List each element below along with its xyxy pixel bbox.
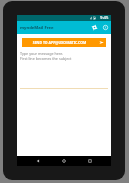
- staticText: First line becomes the subject: [20, 56, 72, 61]
- button[interactable]: Info: [100, 22, 111, 33]
- staticText: 9:45: [100, 15, 109, 21]
- button[interactable]: Back: [33, 156, 43, 166]
- staticText: Type your message here.: [20, 51, 64, 56]
- staticText: SEND TO APP@UXOMATIC.COM: [22, 40, 97, 45]
- staticText: myndeMail Free: [20, 25, 54, 31]
- button[interactable]: SEND TO APP@UXOMATIC.COM: [22, 38, 106, 47]
- button[interactable]: Recents: [85, 156, 95, 166]
- button[interactable]: Home: [59, 156, 69, 166]
- button[interactable]: Settings: [89, 22, 100, 33]
